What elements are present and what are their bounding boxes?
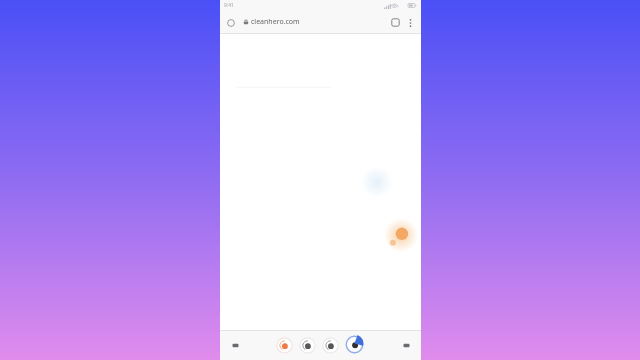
button[interactable]: Home [224, 16, 237, 29]
staticText: 9:41 [224, 2, 234, 9]
button[interactable]: Current tab [344, 334, 365, 355]
button[interactable]: More options [404, 16, 417, 29]
button[interactable]: Tab 2 [299, 337, 316, 354]
button[interactable]: Tab 1 [276, 337, 293, 354]
staticText: cleanhero.com [251, 17, 300, 27]
button[interactable]: Tab 3 [322, 337, 339, 354]
button[interactable]: Back [220, 331, 250, 360]
button[interactable]: Forward [391, 331, 421, 360]
button[interactable]: Tabs [389, 16, 402, 29]
button[interactable]: cleanhero.com [242, 14, 385, 30]
